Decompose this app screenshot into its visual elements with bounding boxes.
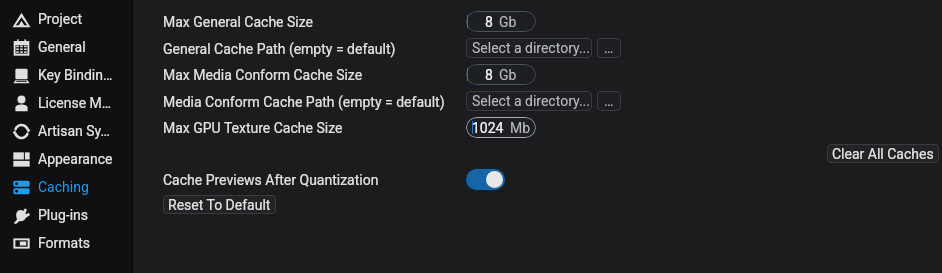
button[interactable]: 8 — [466, 11, 536, 32]
staticText: Artisan Sy… — [38, 123, 110, 139]
button[interactable]: Project — [0, 5, 131, 33]
staticText: License M… — [38, 95, 112, 111]
button[interactable]: Cache previews after quantization toggle — [466, 169, 505, 190]
staticText: General Cache Path (empty = default) — [163, 41, 396, 57]
button[interactable]: Select a directory... — [466, 38, 592, 58]
staticText: Max General Cache Size — [163, 14, 313, 30]
button[interactable]: Select a directory... — [466, 91, 592, 111]
staticText: Formats — [38, 235, 91, 251]
button[interactable]: Caching — [0, 173, 131, 201]
staticText: Plug-ins — [38, 207, 89, 223]
button[interactable]: Artisan Sy… — [0, 117, 131, 145]
button[interactable]: Key Bindin… — [0, 61, 131, 89]
staticText: Clear All Caches — [832, 146, 934, 162]
staticText: Mb — [510, 120, 531, 136]
staticText: Gb — [499, 14, 517, 30]
staticText: Select a directory... — [472, 93, 590, 109]
button[interactable]: Appearance — [0, 145, 131, 173]
staticText: Max GPU Texture Cache Size — [163, 120, 343, 136]
staticText: Gb — [499, 67, 517, 83]
staticText: Select a directory... — [472, 40, 590, 56]
button[interactable]: General — [0, 33, 131, 61]
staticText: … — [604, 40, 614, 56]
button[interactable]: Plug-ins — [0, 201, 131, 229]
staticText: Cache Previews After Quantization — [163, 172, 379, 188]
button[interactable]: Clear All Caches — [827, 144, 939, 163]
staticText: Max Media Conform Cache Size — [163, 67, 363, 83]
button[interactable]: Browse for directory — [597, 91, 621, 111]
button[interactable]: Formats — [0, 229, 131, 257]
button[interactable]: Browse for directory — [597, 38, 621, 58]
staticText: Appearance — [38, 151, 113, 167]
staticText: 8 — [485, 14, 493, 30]
staticText: … — [604, 93, 614, 109]
button[interactable]: Reset To Default — [163, 195, 276, 214]
staticText: 8 — [485, 67, 493, 83]
staticText: General — [38, 39, 86, 55]
staticText: Key Bindin… — [38, 67, 113, 83]
button[interactable]: License M… — [0, 89, 131, 117]
staticText: Media Conform Cache Path (empty = defaul… — [163, 94, 445, 110]
button[interactable]: 8 — [466, 64, 536, 85]
staticText: 1024 — [472, 120, 504, 136]
staticText: Caching — [38, 179, 89, 195]
button[interactable]: 1024 — [466, 117, 536, 138]
staticText: Project — [38, 11, 83, 27]
staticText: Reset To Default — [168, 197, 271, 213]
